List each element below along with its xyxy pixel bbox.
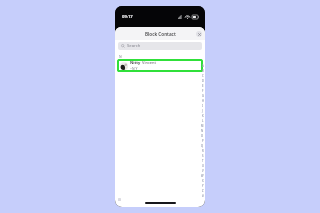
staticText: I xyxy=(202,104,203,108)
staticText: C xyxy=(202,74,204,78)
button[interactable]: Nitty xyxy=(117,59,203,72)
staticText: J xyxy=(202,109,203,113)
staticText: Vincent xyxy=(142,60,156,65)
staticText: X xyxy=(202,179,204,183)
staticText: G xyxy=(202,94,204,98)
staticText: O xyxy=(201,134,204,138)
staticText: B xyxy=(202,69,204,73)
staticText: K xyxy=(202,114,204,118)
staticText: U xyxy=(202,164,204,168)
staticText: A xyxy=(202,64,204,68)
staticText: L xyxy=(202,119,204,123)
staticText: N xyxy=(201,129,204,133)
button[interactable]: Search xyxy=(118,42,202,50)
staticText: S xyxy=(202,154,204,158)
staticText: N xyxy=(119,54,122,59)
staticText: E xyxy=(202,84,204,88)
staticText: Z xyxy=(202,189,204,193)
staticText: F xyxy=(202,89,204,93)
staticText: H xyxy=(202,99,204,103)
staticText: ~N Y xyxy=(130,66,138,71)
staticText: 09:17 xyxy=(122,14,133,20)
button[interactable]: Close xyxy=(196,31,202,37)
staticText: M xyxy=(201,124,204,128)
staticText: # xyxy=(202,194,204,198)
staticText: Q xyxy=(201,144,204,148)
staticText: Block Contact xyxy=(145,31,176,37)
staticText: D xyxy=(202,79,204,83)
staticText: V xyxy=(202,169,204,173)
staticText: R xyxy=(202,149,204,153)
staticText: P xyxy=(202,139,204,143)
staticText: Search xyxy=(127,43,141,49)
staticText: Nitty xyxy=(130,60,141,65)
staticText: Y xyxy=(202,184,204,188)
staticText: W xyxy=(201,174,204,178)
staticText: T xyxy=(202,159,204,163)
